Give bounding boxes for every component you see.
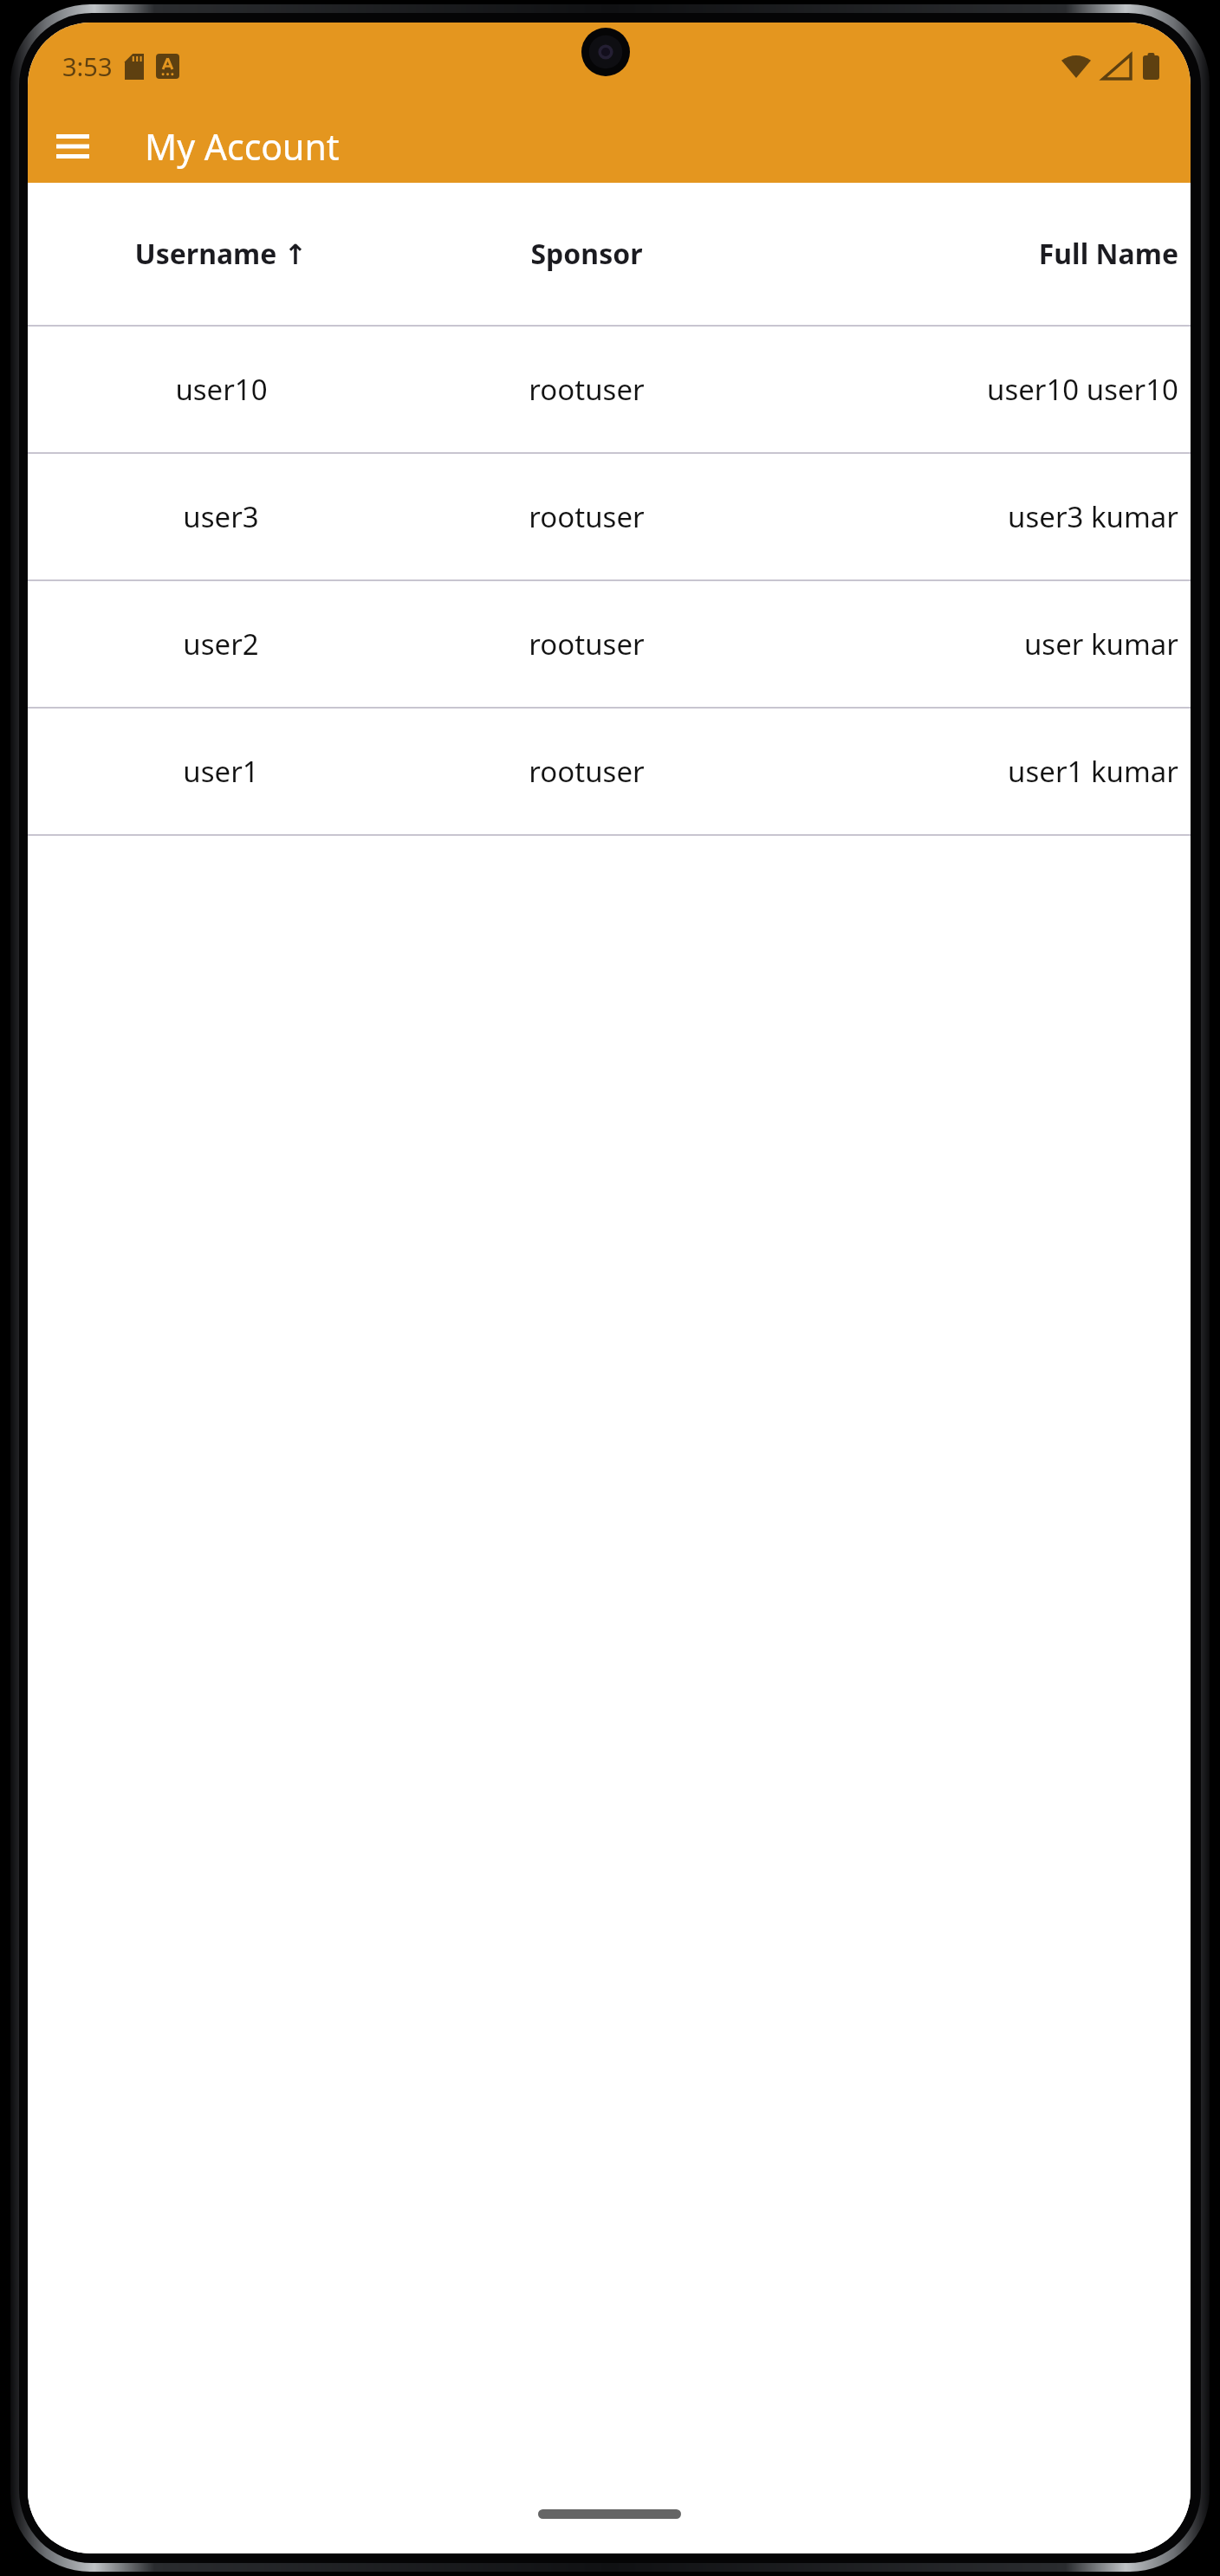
button[interactable]: user2 [28, 581, 1191, 707]
staticText: user3 kumar [1008, 497, 1178, 536]
button[interactable]: user3 [28, 454, 1191, 579]
staticText: My Account [145, 122, 340, 171]
staticText: user10 user10 [987, 370, 1178, 409]
button[interactable]: Username ↑ [28, 183, 1191, 325]
staticText: user3 [183, 497, 259, 536]
staticText: rootuser [529, 497, 645, 536]
button[interactable]: user10 [28, 327, 1191, 452]
staticText: rootuser [529, 625, 645, 663]
staticText: Sponsor [530, 235, 643, 273]
button[interactable]: Open navigation menu [42, 115, 104, 178]
button[interactable]: user1 [28, 709, 1191, 834]
staticText: Full Name [1038, 235, 1178, 273]
staticText: user10 [175, 370, 268, 409]
staticText: user kumar [1023, 625, 1178, 663]
staticText: user1 kumar [1008, 752, 1178, 791]
staticText: Username ↑ [134, 235, 308, 273]
staticText: 3:53 [62, 49, 113, 83]
staticText: user1 [183, 752, 259, 791]
staticText: rootuser [529, 370, 645, 409]
staticText: user2 [183, 625, 259, 663]
staticText: rootuser [529, 752, 645, 791]
